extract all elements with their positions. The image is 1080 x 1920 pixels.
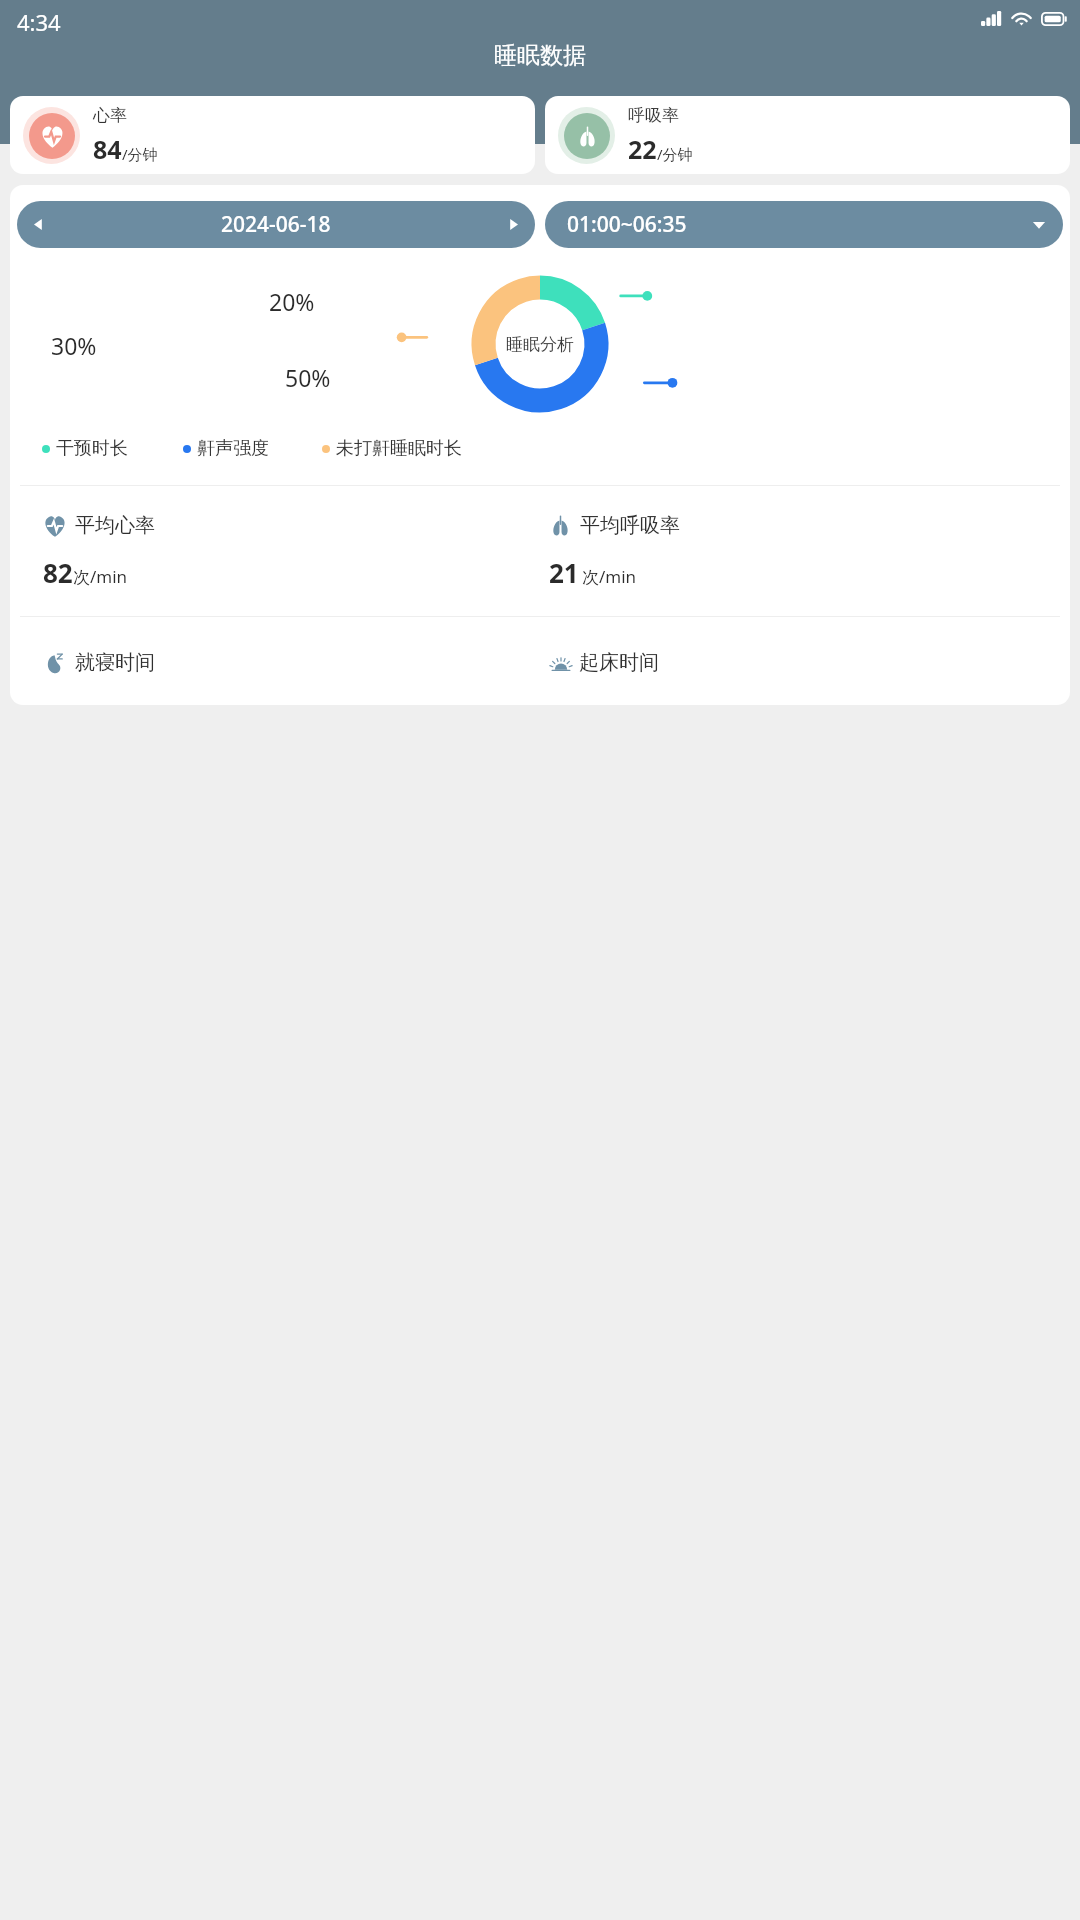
staticText: 心率	[93, 105, 127, 126]
staticText: 就寝时间	[75, 650, 155, 675]
staticText: 84	[93, 132, 122, 166]
other: Signal	[981, 11, 1002, 26]
staticText: 平均呼吸率	[580, 513, 680, 538]
staticText: 呼吸率	[628, 105, 679, 126]
other: Battery	[1041, 12, 1067, 26]
staticText: 20%	[269, 286, 315, 317]
staticText: 30%	[51, 330, 97, 361]
staticText: 起床时间	[579, 650, 659, 675]
staticText: 鼾声强度	[197, 437, 269, 460]
staticText: 21	[549, 555, 579, 590]
other: Next day	[506, 217, 521, 232]
button[interactable]: Previous day	[17, 201, 535, 248]
staticText: 未打鼾睡眠时长	[336, 437, 462, 460]
button[interactable]: 心率	[10, 96, 535, 174]
staticText: 次/min	[582, 565, 637, 588]
staticText: 干预时长	[56, 437, 128, 460]
staticText: 4:34	[17, 7, 61, 37]
button[interactable]: 01:00~06:35	[545, 201, 1063, 248]
button[interactable]: 呼吸率	[545, 96, 1070, 174]
staticText: 82	[43, 555, 73, 590]
staticText: 2024-06-18	[221, 210, 331, 239]
staticText: 22	[628, 132, 657, 166]
other: Select time range	[1031, 217, 1047, 233]
other: Previous day	[31, 217, 46, 232]
staticText: 睡眠数据	[494, 41, 586, 70]
staticText: 睡眠分析	[506, 334, 574, 355]
other: Wi-Fi	[1011, 11, 1032, 26]
staticText: 平均心率	[75, 513, 155, 538]
staticText: 50%	[285, 362, 331, 393]
staticText: 次/min	[73, 565, 128, 588]
staticText: /分钟	[657, 144, 693, 164]
staticText: 01:00~06:35	[567, 210, 687, 239]
staticText: /分钟	[122, 144, 158, 164]
